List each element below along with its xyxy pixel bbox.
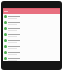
button[interactable]	[3, 44, 60, 50]
button[interactable]	[3, 26, 60, 32]
button[interactable]	[3, 56, 60, 61]
button[interactable]	[3, 14, 60, 20]
button[interactable]	[3, 50, 60, 56]
button[interactable]	[3, 9, 60, 14]
button[interactable]	[3, 38, 60, 44]
button[interactable]	[3, 20, 60, 26]
button[interactable]	[3, 32, 60, 38]
